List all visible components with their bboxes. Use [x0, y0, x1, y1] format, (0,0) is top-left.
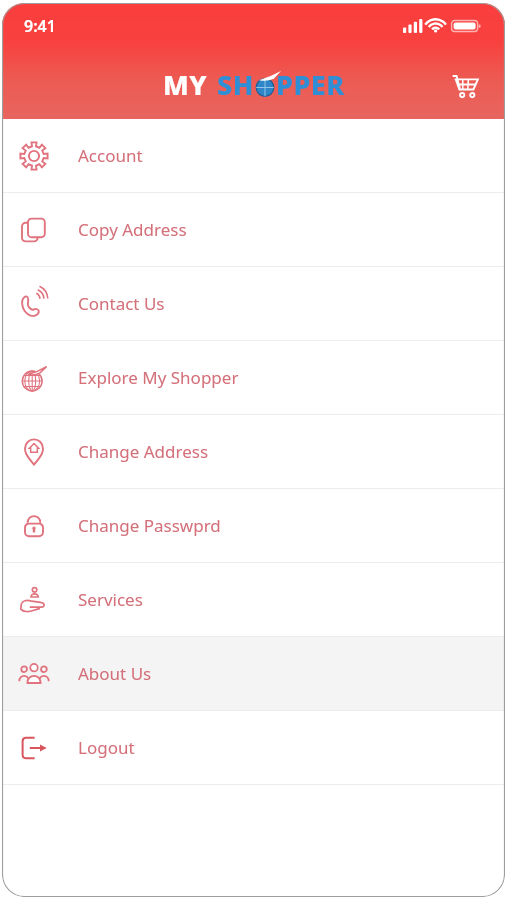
staticText: About Us [78, 662, 152, 685]
button[interactable]: Change Address [2, 415, 505, 488]
button[interactable]: Services [2, 563, 505, 636]
staticText: Change Passwprd [78, 514, 221, 537]
staticText: Explore My Shopper [78, 366, 239, 389]
button[interactable]: About Us [2, 637, 505, 710]
staticText: Services [78, 588, 143, 611]
button[interactable]: Change Passwprd [2, 489, 505, 562]
button[interactable]: Copy Address [2, 193, 505, 266]
button[interactable]: Contact Us [2, 267, 505, 340]
staticText: SH [217, 66, 254, 103]
button[interactable]: Logout [2, 711, 505, 784]
button[interactable]: Account [2, 119, 505, 192]
staticText: PPER [276, 66, 345, 103]
button[interactable]: Cart [441, 61, 489, 109]
staticText: Contact Us [78, 292, 165, 315]
button[interactable]: Explore My Shopper [2, 341, 505, 414]
staticText: Change Address [78, 440, 209, 463]
staticText: Account [78, 144, 143, 167]
staticText: Copy Address [78, 218, 187, 241]
staticText: MY [163, 66, 208, 103]
staticText: 9:41 [24, 15, 56, 37]
staticText: Logout [78, 736, 135, 759]
